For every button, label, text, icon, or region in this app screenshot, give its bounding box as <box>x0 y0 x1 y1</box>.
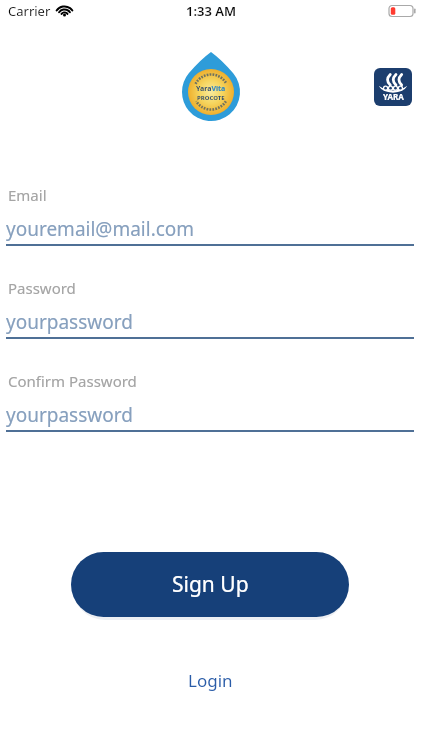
staticText: yourpassword <box>6 309 133 335</box>
staticText: Password <box>8 278 76 298</box>
staticText: 1:33 AM <box>186 2 237 20</box>
staticText: yourpassword <box>6 402 133 428</box>
button[interactable]: Sign Up <box>71 552 349 617</box>
button[interactable]: youremail@mail.com <box>6 216 414 246</box>
staticText: youremail@mail.com <box>6 216 195 242</box>
button[interactable]: yourpassword <box>6 402 414 432</box>
staticText: YARA <box>383 91 404 102</box>
staticText: Sign Up <box>172 570 249 599</box>
staticText: Carrier <box>8 2 51 20</box>
staticText: PROCOTE <box>197 94 225 102</box>
button[interactable]: yourpassword <box>6 309 414 339</box>
staticText: YaraVita <box>196 84 226 94</box>
staticText: Confirm Password <box>8 371 137 391</box>
staticText: Login <box>188 669 233 692</box>
button[interactable]: Login <box>180 661 241 700</box>
staticText: Email <box>8 185 47 205</box>
